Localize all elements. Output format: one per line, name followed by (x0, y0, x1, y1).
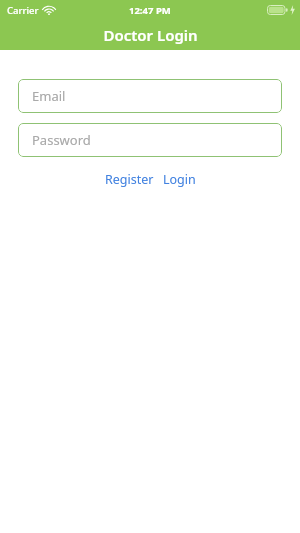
staticText: Login (163, 171, 196, 188)
staticText: 12:47 PM (129, 4, 171, 17)
other: Charging (290, 5, 295, 15)
staticText: Register (105, 171, 154, 188)
staticText: Password (32, 131, 91, 149)
staticText: Carrier (7, 4, 39, 17)
button[interactable]: Email (18, 79, 282, 113)
staticText: Email (32, 87, 66, 105)
other: Wi-Fi signal (43, 6, 55, 15)
other: Battery (267, 5, 288, 15)
button[interactable]: Register (103, 169, 156, 190)
staticText: Doctor Login (103, 25, 198, 45)
button[interactable]: Login (161, 169, 198, 190)
button[interactable]: Password (18, 123, 282, 157)
